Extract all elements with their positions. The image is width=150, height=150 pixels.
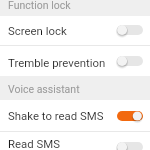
staticText: Voice assistant [8, 83, 80, 95]
staticText: Screen lock [8, 24, 121, 37]
button[interactable]: Tremble prevention [0, 46, 150, 76]
button[interactable]: Shake to read SMS [0, 100, 150, 131]
staticText: Shake to read SMS [8, 109, 121, 122]
staticText: Tremble prevention [8, 56, 121, 69]
button[interactable]: Screen lock [0, 16, 150, 45]
staticText: Function lock [8, 0, 71, 11]
staticText: Read SMS [8, 137, 121, 150]
button[interactable]: Read SMS [0, 132, 150, 150]
